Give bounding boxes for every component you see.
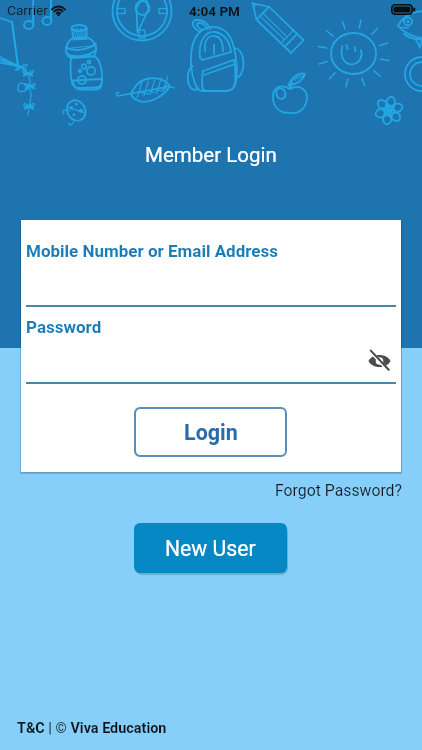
staticText: T&C | © Viva Education — [17, 720, 167, 737]
button[interactable]: Login — [134, 407, 287, 457]
staticText: Mobile Number or Email Address — [26, 241, 279, 261]
button[interactable]: Forgot Password? — [275, 481, 402, 500]
button[interactable]: New User — [134, 523, 287, 573]
staticText: Carrier — [7, 2, 48, 18]
staticText: Member Login — [145, 143, 277, 167]
staticText: 4:04 PM — [189, 3, 240, 19]
staticText: Login — [184, 420, 238, 445]
button[interactable]: T&C | © Viva Education — [17, 720, 167, 737]
staticText: Forgot Password? — [275, 481, 402, 500]
staticText: New User — [165, 536, 256, 561]
staticText: Password — [26, 317, 102, 337]
button[interactable]: Show password — [362, 347, 396, 375]
